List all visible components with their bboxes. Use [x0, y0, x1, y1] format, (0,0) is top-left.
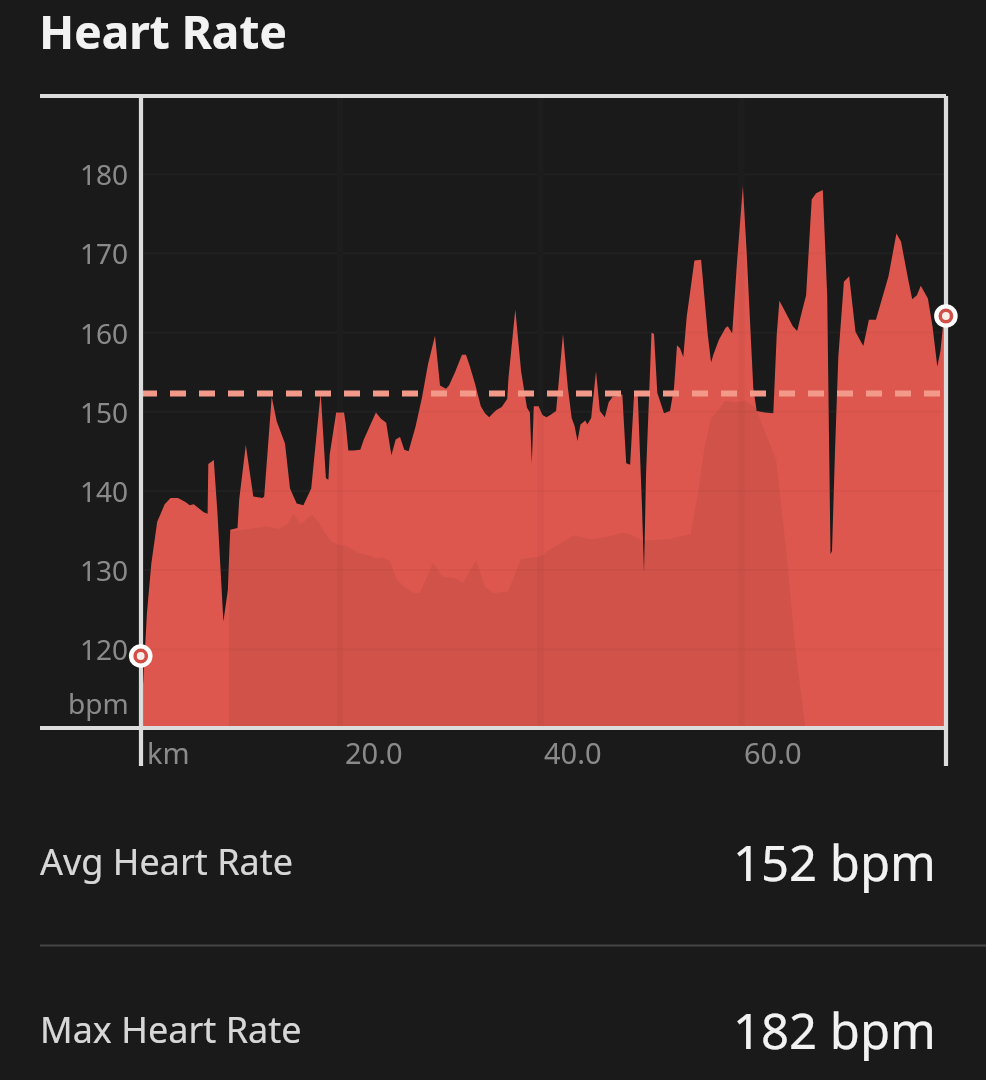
staticText: Avg Heart Rate [40, 833, 294, 882]
staticText: 152 bpm [733, 825, 932, 890]
button[interactable]: Heart rate chart, 120 to 180 bpm over 0 … [0, 78, 986, 790]
button[interactable]: Avg Heart Rate, 152 bpm [0, 790, 986, 925]
button[interactable]: Heart Rate [0, 0, 986, 78]
button[interactable]: Max Heart Rate, 182 bpm [0, 925, 986, 1060]
staticText: 182 bpm [733, 960, 932, 1025]
